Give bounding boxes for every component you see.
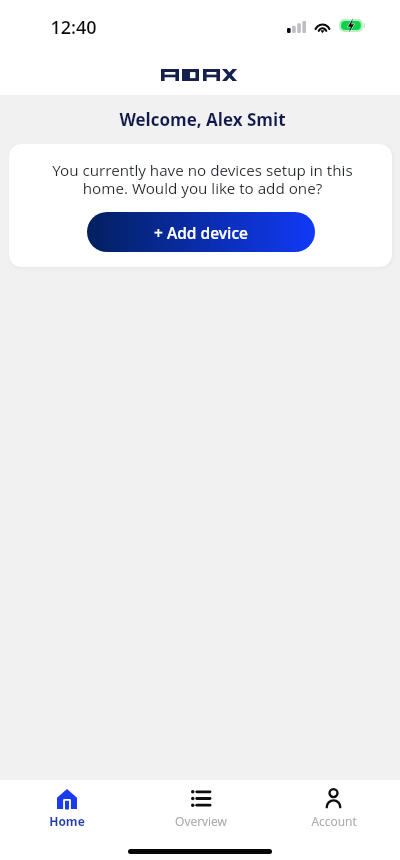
staticText: You currently have no devices setup in t… — [52, 160, 353, 199]
staticText: Welcome, Alex Smit — [119, 108, 286, 131]
button[interactable]: Account — [267, 780, 400, 830]
other: ADAX — [160, 69, 238, 81]
staticText: Overview — [175, 813, 227, 829]
button[interactable]: Overview — [134, 780, 267, 830]
staticText: Account — [311, 813, 357, 829]
button[interactable]: + Add device — [87, 212, 315, 252]
staticText: + Add device — [154, 222, 248, 243]
button[interactable]: Home — [0, 780, 134, 830]
staticText: Home — [49, 813, 85, 829]
staticText: 12:40 — [50, 15, 97, 40]
